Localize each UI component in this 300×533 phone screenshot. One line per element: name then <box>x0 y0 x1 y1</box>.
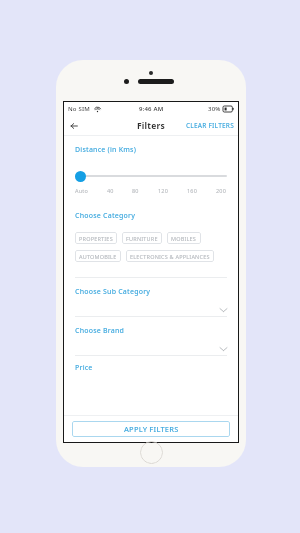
staticText: MOBILES <box>171 235 197 242</box>
button[interactable]: Distance slider <box>75 171 86 182</box>
button[interactable]: Back <box>64 116 84 136</box>
button[interactable]: AUTOMOBILE <box>75 250 121 262</box>
staticText: 9:46 AM <box>139 105 164 113</box>
button[interactable]: Choose Brand <box>64 317 238 355</box>
staticText: Price <box>75 363 93 373</box>
staticText: Distance (in Kms) <box>75 145 137 155</box>
staticText: PROPERTIES <box>79 235 113 242</box>
staticText: Choose Brand <box>75 326 125 336</box>
button[interactable]: PROPERTIES <box>75 232 117 244</box>
staticText: Choose Sub Category <box>75 287 151 297</box>
staticText: FURNITURE <box>126 235 158 242</box>
staticText: ELECTRONICS & APPLIANCES <box>130 253 210 260</box>
staticText: 200 <box>216 187 227 194</box>
button[interactable]: Home <box>140 441 163 464</box>
button[interactable]: APPLY FILTERS <box>72 421 230 437</box>
button[interactable]: MOBILES <box>167 232 201 244</box>
staticText: 160 <box>187 187 198 194</box>
staticText: Choose Category <box>75 211 136 221</box>
button[interactable]: ELECTRONICS & APPLIANCES <box>126 250 214 262</box>
staticText: APPLY FILTERS <box>124 424 179 434</box>
staticText: Auto <box>75 187 89 194</box>
staticText: CLEAR FILTERS <box>186 121 234 130</box>
staticText: AUTOMOBILE <box>79 253 117 260</box>
staticText: 120 <box>158 187 169 194</box>
button[interactable]: CLEAR FILTERS <box>182 118 238 133</box>
button[interactable]: Choose Sub Category <box>64 278 238 316</box>
button[interactable]: FURNITURE <box>122 232 162 244</box>
staticText: 80 <box>132 187 139 194</box>
staticText: 40 <box>107 187 114 194</box>
staticText: Filters <box>137 120 165 132</box>
staticText: 30% <box>208 105 221 113</box>
staticText: No SIM <box>68 105 91 113</box>
